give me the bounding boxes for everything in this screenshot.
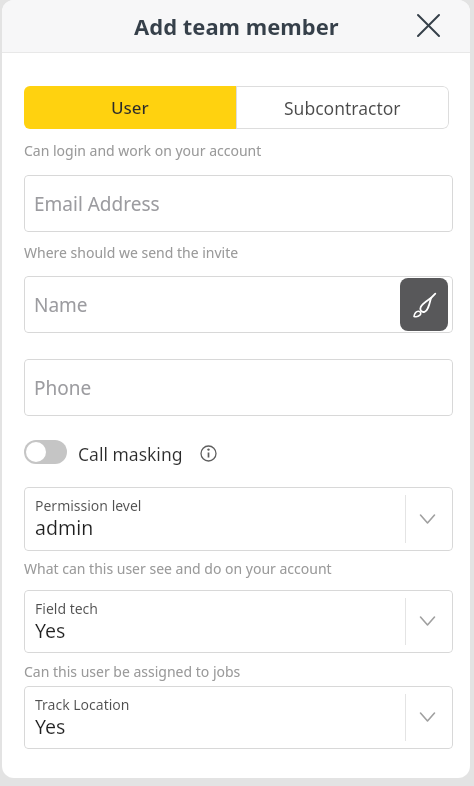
staticText: Where should we send the invite bbox=[24, 243, 239, 262]
button[interactable] bbox=[24, 440, 67, 464]
button[interactable]: Name bbox=[24, 276, 453, 333]
staticText: Track Location bbox=[35, 695, 130, 714]
button[interactable]: User bbox=[24, 86, 236, 129]
staticText: Yes bbox=[35, 713, 66, 740]
staticText: Add team member bbox=[134, 11, 339, 41]
button[interactable]: Phone bbox=[24, 359, 453, 416]
button[interactable]: Permission level bbox=[24, 487, 453, 551]
button[interactable]: Field tech bbox=[24, 590, 453, 653]
staticText: Name bbox=[34, 292, 88, 318]
staticText: What can this user see and do on your ac… bbox=[24, 559, 332, 578]
button[interactable]: Email Address bbox=[24, 175, 453, 232]
button[interactable]: Subcontractor bbox=[236, 86, 449, 129]
button[interactable] bbox=[410, 7, 446, 43]
button[interactable] bbox=[400, 278, 448, 331]
staticText: Yes bbox=[35, 617, 66, 644]
staticText: Permission level bbox=[35, 496, 142, 515]
staticText: Can this user be assigned to jobs bbox=[24, 662, 241, 681]
staticText: admin bbox=[35, 514, 94, 541]
staticText: Email Address bbox=[34, 191, 160, 217]
staticText: Call masking bbox=[78, 442, 183, 466]
staticText: User bbox=[111, 96, 149, 119]
staticText: Subcontractor bbox=[284, 96, 401, 120]
button[interactable]: Track Location bbox=[24, 686, 453, 749]
staticText: Field tech bbox=[35, 599, 98, 618]
staticText: Phone bbox=[34, 375, 92, 401]
staticText: Can login and work on your account bbox=[24, 141, 262, 160]
